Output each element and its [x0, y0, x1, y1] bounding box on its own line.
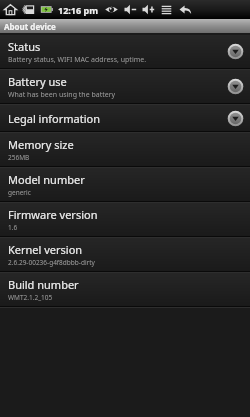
- staticText: Firmware version: [8, 207, 98, 222]
- button[interactable]: Kernel version: [0, 238, 250, 271]
- staticText: Legal information: [8, 111, 100, 126]
- staticText: About device: [4, 21, 56, 32]
- staticText: Memory size: [8, 137, 74, 152]
- button[interactable]: Expand Legal information: [227, 110, 244, 127]
- staticText: Model number: [8, 172, 85, 187]
- staticText: 256MB: [8, 153, 30, 162]
- button[interactable]: Status: [0, 35, 250, 68]
- button[interactable]: Legal information: [0, 105, 250, 131]
- button[interactable]: Battery use: [0, 70, 250, 103]
- staticText: Status: [8, 39, 41, 54]
- button[interactable]: Build number: [0, 273, 250, 306]
- button[interactable]: Model number: [0, 168, 250, 201]
- staticText: What has been using the battery: [8, 90, 116, 100]
- button[interactable]: Expand Status: [227, 43, 244, 60]
- staticText: Battery use: [8, 74, 67, 89]
- staticText: generic: [8, 188, 31, 197]
- staticText: Build number: [8, 277, 79, 292]
- button[interactable]: Firmware version: [0, 203, 250, 236]
- button[interactable]: Memory size: [0, 133, 250, 166]
- staticText: Kernel version: [8, 242, 83, 257]
- staticText: 2.6.29-00236-g4f8dbbb-dirty: [8, 258, 95, 267]
- staticText: 1.6: [8, 223, 18, 232]
- button[interactable]: Expand Battery use: [227, 78, 244, 95]
- staticText: Battery status, WIFI MAC address, uptime…: [8, 55, 147, 65]
- staticText: WMT2.1.2_105: [8, 293, 53, 302]
- staticText: 12:16 pm: [58, 4, 98, 16]
